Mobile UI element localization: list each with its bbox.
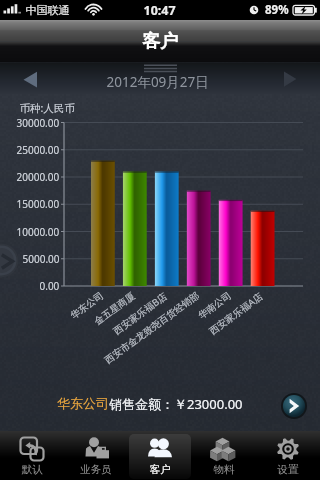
button[interactable]: [0, 387, 280, 431]
button[interactable]: Next day: [264, 62, 320, 94]
button[interactable]: [64, 431, 128, 480]
button[interactable]: [256, 431, 320, 480]
button[interactable]: [192, 431, 256, 480]
button[interactable]: [0, 431, 64, 480]
button[interactable]: [56, 62, 264, 94]
button[interactable]: Previous day: [0, 62, 56, 94]
button[interactable]: Next record: [280, 387, 320, 431]
button[interactable]: Scroll chart left: [0, 245, 18, 279]
button[interactable]: [128, 431, 192, 480]
